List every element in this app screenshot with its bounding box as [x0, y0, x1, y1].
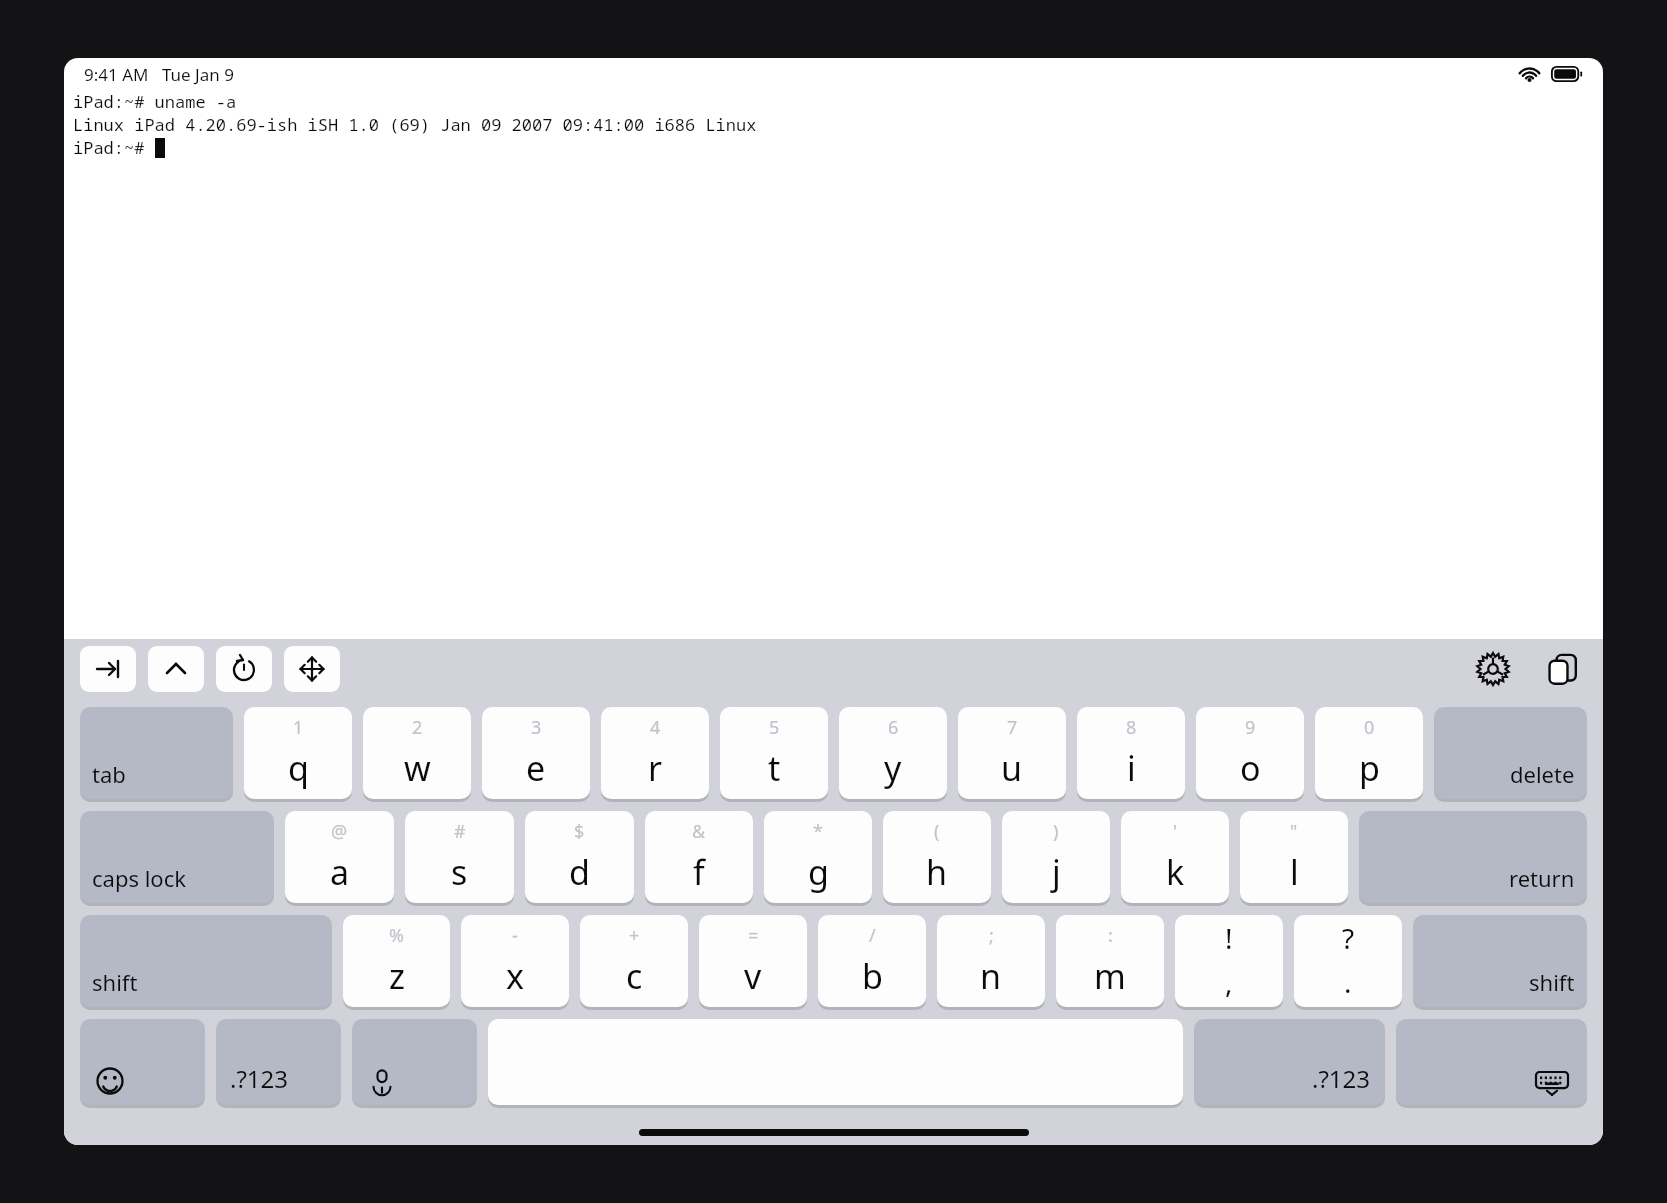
button[interactable]: 2	[363, 707, 471, 799]
staticText: 9	[1245, 715, 1256, 740]
staticText: -	[512, 923, 518, 948]
button[interactable]: Tabs	[1539, 645, 1587, 693]
staticText: $	[574, 819, 585, 844]
button[interactable]: 7	[958, 707, 1066, 799]
button[interactable]: #	[405, 811, 514, 903]
button[interactable]: )	[1002, 811, 1110, 903]
staticText: @	[331, 819, 348, 844]
staticText: 2	[412, 715, 423, 740]
staticText: b	[862, 953, 883, 999]
staticText: g	[808, 849, 829, 895]
staticText: shift	[92, 967, 138, 997]
staticText: f	[693, 849, 705, 895]
staticText: m	[1094, 953, 1126, 999]
button[interactable]: @	[285, 811, 394, 903]
staticText: %	[389, 923, 404, 948]
button[interactable]: 1	[244, 707, 352, 799]
button[interactable]: ?	[1294, 915, 1402, 1007]
button[interactable]: 3	[482, 707, 590, 799]
staticText: .?123	[230, 1062, 289, 1095]
staticText: =	[748, 923, 759, 948]
button[interactable]: "	[1240, 811, 1348, 903]
button[interactable]: 9	[1196, 707, 1304, 799]
button[interactable]: %	[343, 915, 450, 1007]
staticText: ?	[1342, 919, 1355, 957]
staticText: "	[1290, 819, 1298, 844]
staticText: ;	[989, 923, 994, 948]
button[interactable]: Emoji	[80, 1019, 205, 1105]
staticText: s	[451, 849, 468, 895]
staticText: r	[648, 745, 663, 791]
button[interactable]: /	[818, 915, 926, 1007]
staticText: .	[1344, 963, 1352, 1001]
button[interactable]: Control	[148, 646, 204, 692]
staticText: 3	[531, 715, 542, 740]
staticText: c	[626, 953, 643, 999]
button[interactable]: -	[461, 915, 569, 1007]
staticText: e	[526, 745, 546, 791]
button[interactable]: :	[1056, 915, 1164, 1007]
staticText: ,	[1225, 963, 1233, 1001]
staticText: 9:41 AM	[84, 63, 149, 86]
staticText: x	[506, 953, 524, 999]
staticText: h	[926, 849, 948, 895]
staticText: o	[1240, 745, 1261, 791]
button[interactable]: !	[1175, 915, 1283, 1007]
staticText: a	[330, 849, 350, 895]
button[interactable]: +	[580, 915, 688, 1007]
button[interactable]: caps lock	[80, 811, 274, 903]
staticText: 0	[1364, 715, 1375, 740]
staticText: iPad:~#	[73, 136, 155, 159]
staticText: y	[884, 745, 902, 791]
button[interactable]: shift	[80, 915, 332, 1007]
button[interactable]: Escape	[216, 646, 272, 692]
button[interactable]: 5	[720, 707, 828, 799]
staticText: 4	[650, 715, 661, 740]
button[interactable]: '	[1121, 811, 1229, 903]
button[interactable]: (	[883, 811, 991, 903]
staticText: !	[1225, 919, 1233, 957]
button[interactable]: .?123	[1194, 1019, 1385, 1105]
button[interactable]: shift	[1413, 915, 1587, 1007]
button[interactable]: &	[645, 811, 753, 903]
button[interactable]: 8	[1077, 707, 1185, 799]
staticText: caps lock	[92, 863, 186, 893]
button[interactable]: =	[699, 915, 807, 1007]
button[interactable]: Hide keyboard	[1396, 1019, 1587, 1105]
staticText: Tue Jan 9	[162, 63, 234, 86]
button[interactable]: $	[525, 811, 634, 903]
button[interactable]: Arrows	[284, 646, 340, 692]
staticText: t	[768, 745, 781, 791]
staticText: j	[1052, 849, 1061, 895]
button[interactable]: *	[764, 811, 872, 903]
staticText: &	[692, 819, 706, 844]
button[interactable]: Dictate	[352, 1019, 477, 1105]
button[interactable]: 0	[1315, 707, 1423, 799]
staticText: 6	[888, 715, 899, 740]
staticText: k	[1166, 849, 1185, 895]
staticText: i	[1127, 745, 1136, 791]
button[interactable]: Settings	[1469, 645, 1517, 693]
staticText: Linux iPad 4.20.69-ish iSH 1.0 (69) Jan …	[73, 113, 757, 136]
staticText: 8	[1126, 715, 1137, 740]
staticText: v	[744, 953, 762, 999]
button[interactable]: return	[1359, 811, 1587, 903]
staticText: (	[934, 819, 940, 844]
staticText: tab	[92, 759, 126, 789]
button[interactable]: 6	[839, 707, 947, 799]
button[interactable]: tab	[80, 707, 233, 799]
button[interactable]: .?123	[216, 1019, 341, 1105]
button[interactable]: ;	[937, 915, 1045, 1007]
staticText: +	[629, 923, 640, 948]
staticText: w	[404, 745, 431, 791]
staticText: iPad:~# uname -a	[73, 90, 237, 113]
button[interactable]: 4	[601, 707, 709, 799]
staticText: l	[1290, 849, 1299, 895]
staticText: 1	[293, 715, 304, 740]
button[interactable]: Tab	[80, 646, 136, 692]
staticText: .?123	[1312, 1062, 1371, 1095]
button[interactable]: delete	[1434, 707, 1587, 799]
staticText: 7	[1007, 715, 1018, 740]
staticText: 5	[769, 715, 780, 740]
